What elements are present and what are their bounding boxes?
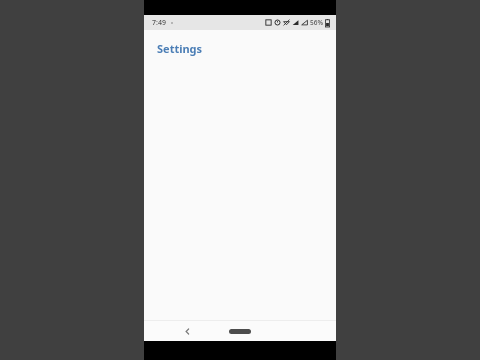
staticText: 56% [310, 18, 323, 27]
staticText: Settings [157, 41, 203, 56]
staticText: 7:49 [152, 18, 166, 28]
button[interactable]: Back [180, 324, 194, 338]
button[interactable]: Home [229, 329, 251, 334]
